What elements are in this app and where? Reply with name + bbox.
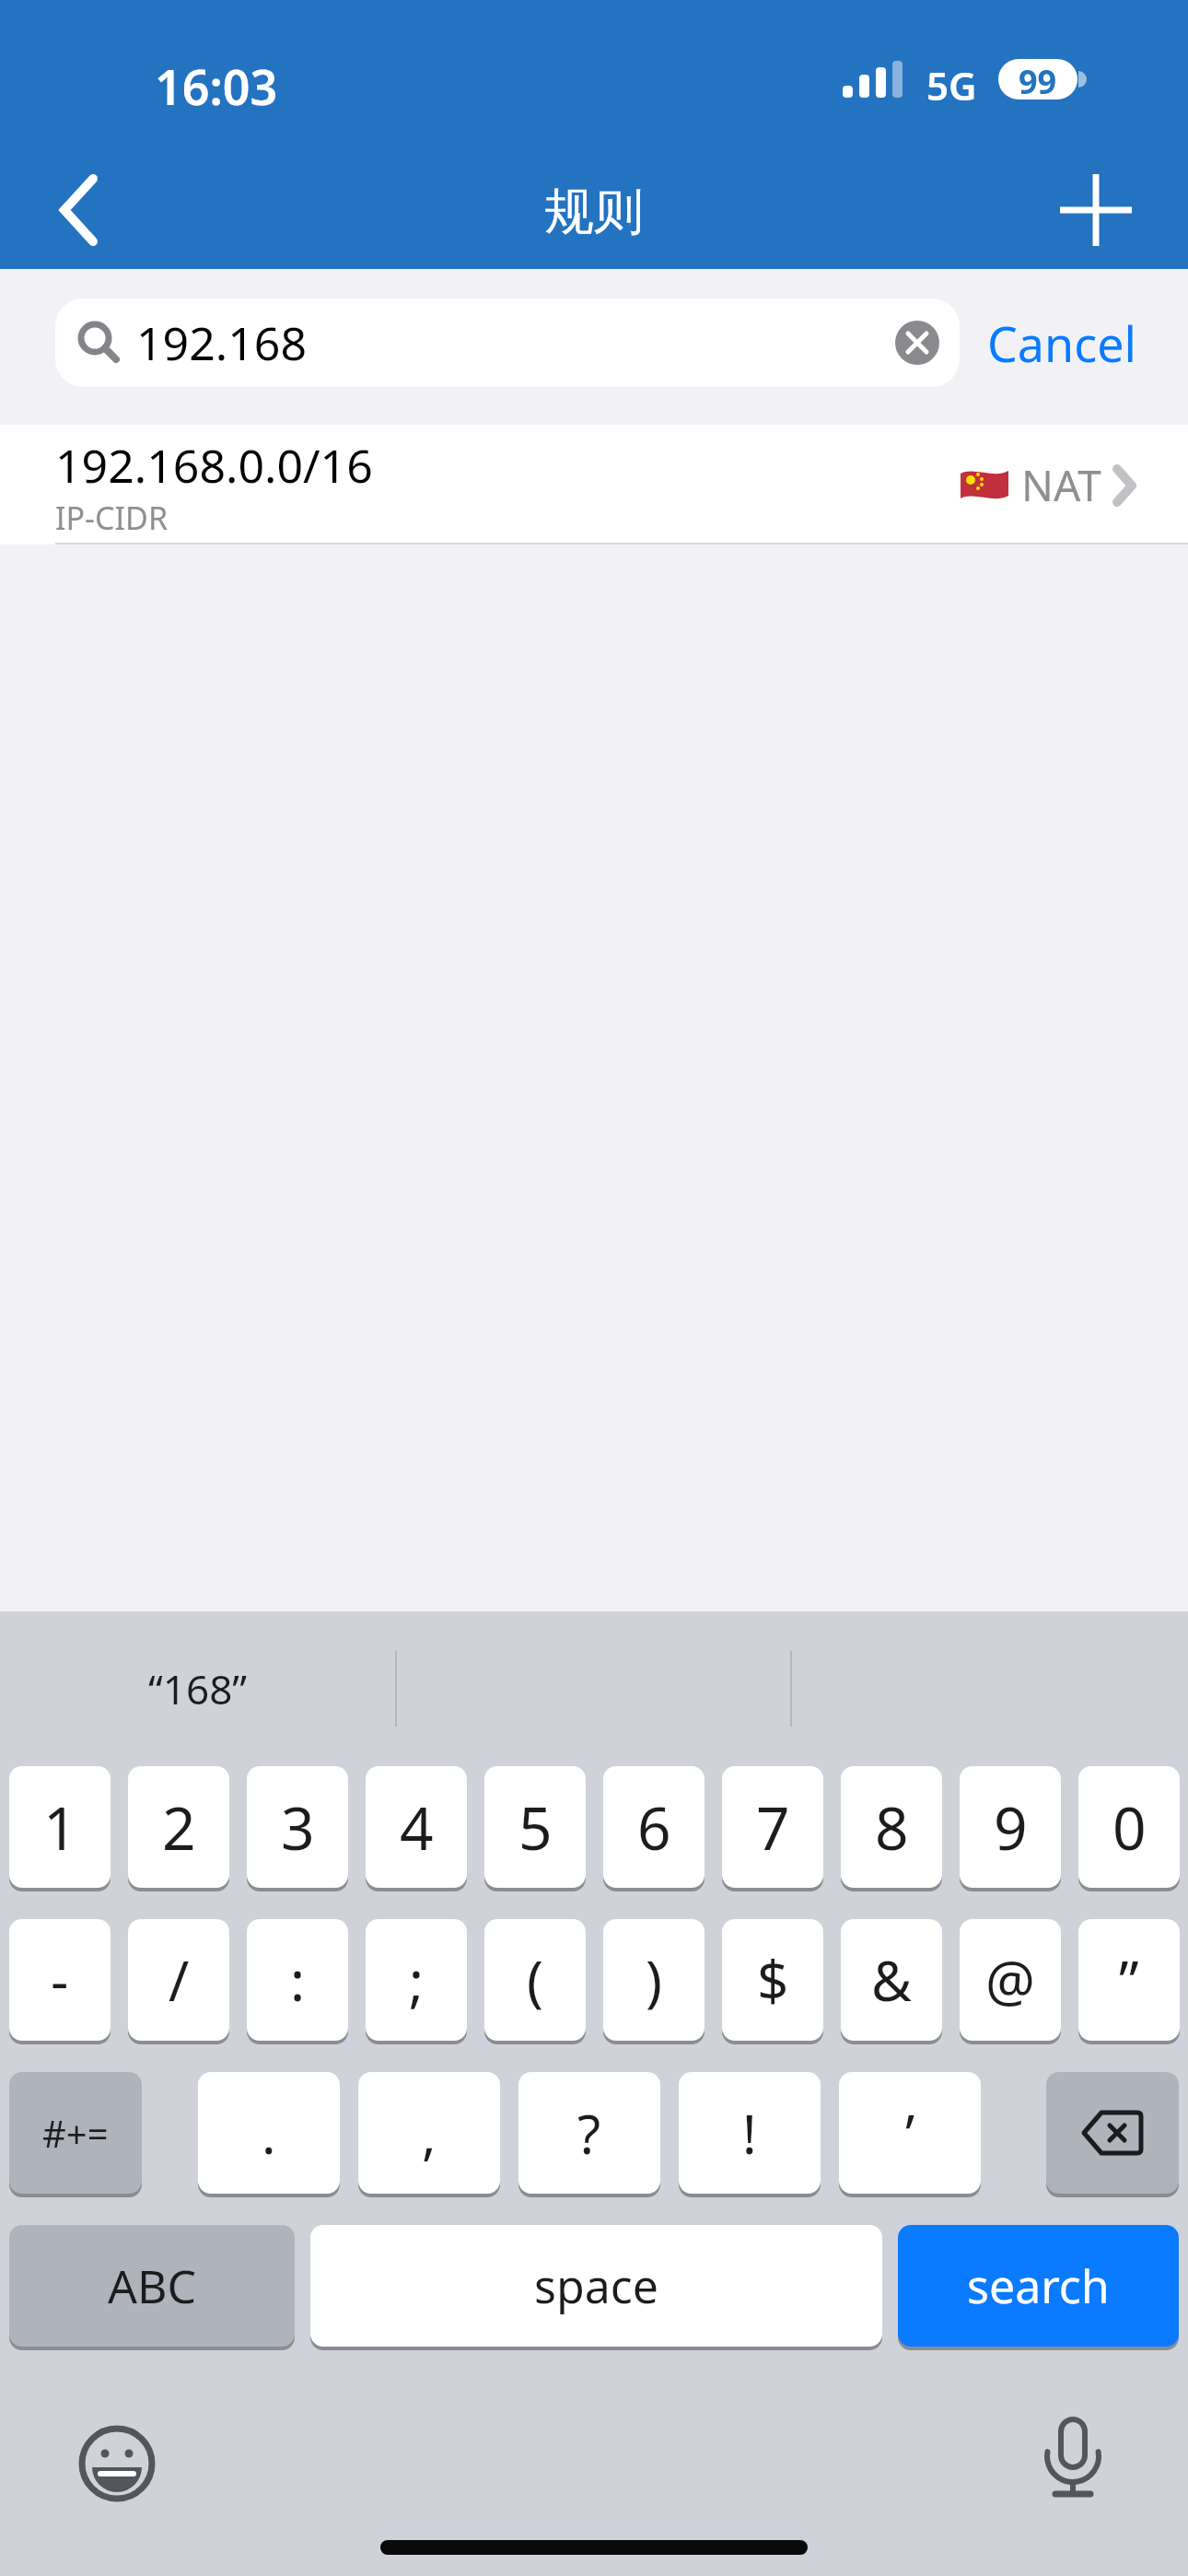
button[interactable]: ( bbox=[484, 1919, 586, 2044]
button[interactable]: / bbox=[128, 1919, 229, 2044]
button[interactable]: @ bbox=[960, 1919, 1061, 2044]
button[interactable] bbox=[1041, 161, 1151, 259]
button[interactable]: ’ bbox=[839, 2072, 981, 2197]
staticText: @ bbox=[985, 1942, 1035, 2018]
button[interactable]: 2 bbox=[128, 1766, 229, 1891]
staticText: ! bbox=[742, 2097, 757, 2170]
staticText: - bbox=[51, 1942, 69, 2018]
staticText: 2 bbox=[162, 1787, 196, 1868]
button[interactable]: ) bbox=[603, 1919, 705, 2044]
button[interactable]: 192.168.0.0/16 bbox=[0, 425, 1188, 544]
staticText: ? bbox=[577, 2097, 601, 2170]
staticText: search bbox=[967, 2254, 1110, 2317]
staticText: ’ bbox=[905, 2097, 915, 2170]
button[interactable]: 192.168 bbox=[55, 299, 960, 387]
staticText: . bbox=[262, 2097, 276, 2170]
staticText: 规则 bbox=[544, 181, 644, 243]
staticText: 0 bbox=[1112, 1787, 1147, 1868]
staticText: 99 bbox=[1019, 59, 1057, 100]
staticText: 3 bbox=[281, 1787, 315, 1868]
staticText: “168” bbox=[148, 1661, 248, 1716]
button[interactable] bbox=[1046, 2072, 1179, 2197]
button[interactable] bbox=[1011, 2392, 1135, 2521]
staticText: 192.168 bbox=[136, 311, 307, 374]
button[interactable]: 1 bbox=[9, 1766, 111, 1891]
staticText: $ bbox=[757, 1942, 789, 2018]
button[interactable] bbox=[55, 2402, 179, 2525]
staticText: NAT bbox=[1021, 456, 1101, 514]
staticText: 16:03 bbox=[155, 53, 278, 119]
button[interactable]: , bbox=[358, 2072, 500, 2197]
staticText: & bbox=[871, 1942, 912, 2018]
staticText: 7 bbox=[756, 1787, 790, 1868]
staticText: 8 bbox=[875, 1787, 909, 1868]
button[interactable]: 8 bbox=[841, 1766, 942, 1891]
button[interactable]: ” bbox=[1078, 1919, 1180, 2044]
staticText: ABC bbox=[108, 2254, 197, 2317]
button[interactable]: ! bbox=[679, 2072, 821, 2197]
button[interactable]: ABC bbox=[9, 2225, 295, 2350]
button[interactable]: search bbox=[898, 2225, 1179, 2350]
button[interactable]: ; bbox=[366, 1919, 467, 2044]
staticText: #+= bbox=[42, 2108, 109, 2158]
button[interactable]: space bbox=[310, 2225, 882, 2350]
staticText: ; bbox=[409, 1942, 425, 2018]
button[interactable]: 6 bbox=[603, 1766, 705, 1891]
staticText: 5 bbox=[518, 1787, 553, 1868]
staticText: : bbox=[290, 1942, 306, 2018]
button[interactable]: : bbox=[247, 1919, 348, 2044]
staticText: / bbox=[169, 1942, 190, 2018]
staticText: , bbox=[422, 2097, 437, 2170]
staticText: 1 bbox=[43, 1787, 77, 1868]
staticText: 4 bbox=[400, 1787, 434, 1868]
staticText: ” bbox=[1119, 1942, 1139, 2018]
staticText: ( bbox=[527, 1942, 543, 2018]
staticText: space bbox=[534, 2254, 658, 2317]
staticText: IP-CIDR bbox=[55, 497, 169, 539]
staticText: ) bbox=[646, 1942, 662, 2018]
staticText: 9 bbox=[994, 1787, 1028, 1868]
button[interactable]: 9 bbox=[960, 1766, 1061, 1891]
staticText: Cancel bbox=[987, 310, 1136, 376]
button[interactable]: #+= bbox=[9, 2072, 142, 2197]
button[interactable]: Cancel bbox=[970, 299, 1154, 387]
button[interactable]: 7 bbox=[722, 1766, 823, 1891]
button[interactable]: - bbox=[9, 1919, 111, 2044]
staticText: 5G bbox=[926, 59, 977, 111]
staticText: 192.168.0.0/16 bbox=[55, 434, 373, 497]
button[interactable]: & bbox=[841, 1919, 942, 2044]
button[interactable]: 4 bbox=[366, 1766, 467, 1891]
button[interactable]: 0 bbox=[1078, 1766, 1180, 1891]
button[interactable]: ? bbox=[518, 2072, 660, 2197]
button[interactable]: 3 bbox=[247, 1766, 348, 1891]
button[interactable] bbox=[895, 321, 939, 365]
button[interactable]: . bbox=[198, 2072, 340, 2197]
button[interactable]: $ bbox=[722, 1919, 823, 2044]
button[interactable]: 5 bbox=[484, 1766, 586, 1891]
button[interactable] bbox=[37, 161, 120, 259]
button[interactable]: “168” bbox=[0, 1611, 396, 1766]
staticText: 6 bbox=[637, 1787, 671, 1868]
